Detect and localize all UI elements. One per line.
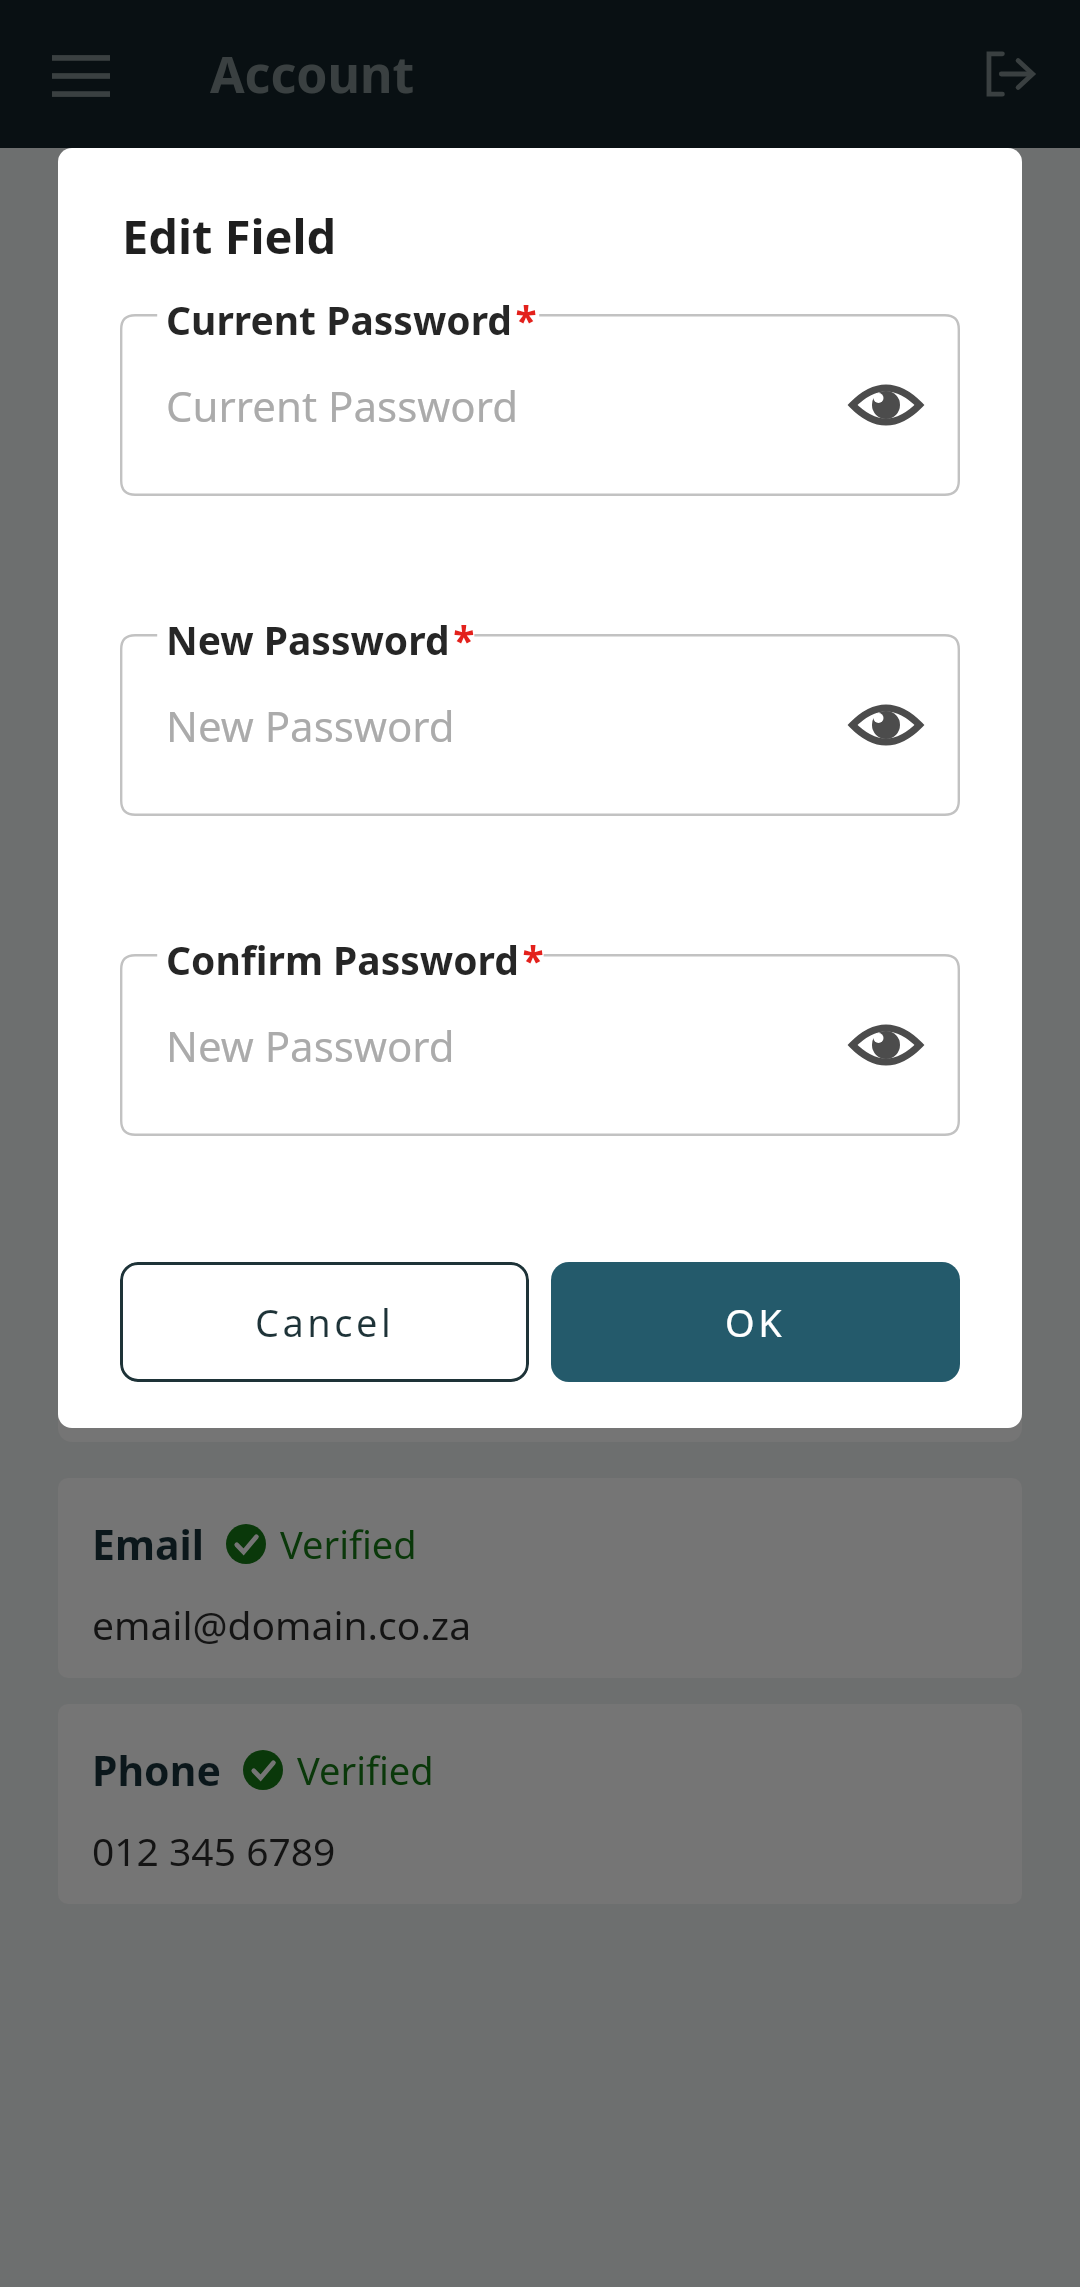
staticText: Confirm Password * — [166, 933, 544, 986]
button[interactable]: Show password — [840, 359, 932, 451]
staticText: OK — [725, 1296, 786, 1348]
button[interactable] — [58, 174, 1022, 1442]
staticText: Account — [210, 40, 415, 108]
button[interactable]: Show password — [840, 999, 932, 1091]
staticText: Verified — [297, 1744, 434, 1796]
button[interactable]: OK — [551, 1262, 960, 1382]
staticText: 012 345 6789 — [92, 1824, 336, 1877]
button[interactable]: Email — [58, 1478, 1022, 1678]
staticText: Email — [92, 1516, 204, 1572]
staticText: Current Password * — [166, 293, 537, 346]
button[interactable]: Open navigation menu — [36, 29, 126, 119]
button[interactable]: Log out — [962, 28, 1054, 120]
staticText: New Password — [166, 1017, 455, 1074]
staticText: Current Password — [166, 377, 519, 434]
button[interactable]: Confirm Password * — [120, 954, 960, 1136]
staticText: New Password — [166, 697, 455, 754]
button[interactable]: New Password * — [120, 634, 960, 816]
staticText: Edit Field — [122, 204, 337, 268]
staticText: email@domain.co.za — [92, 1598, 472, 1651]
staticText: New Password * — [166, 613, 475, 666]
button[interactable]: Show password — [840, 679, 932, 771]
staticText: Cancel — [255, 1296, 395, 1348]
button[interactable]: Phone — [58, 1704, 1022, 1904]
staticText: Verified — [280, 1518, 417, 1570]
button[interactable]: Current Password * — [120, 314, 960, 496]
staticText: Phone — [92, 1742, 221, 1798]
button[interactable]: Cancel — [120, 1262, 529, 1382]
